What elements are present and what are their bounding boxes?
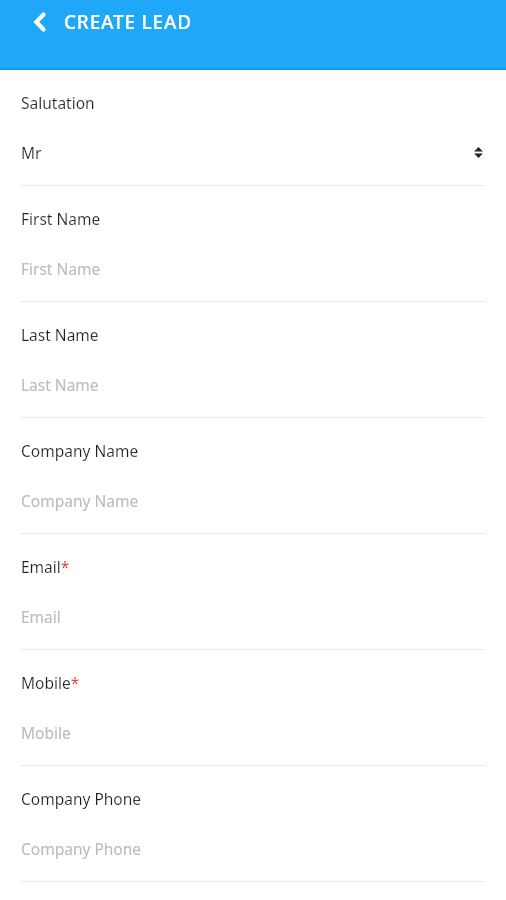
staticText: Email (21, 606, 61, 627)
staticText: Company Name (21, 440, 139, 461)
staticText: First Name (21, 208, 101, 229)
button[interactable]: Company Name (0, 418, 506, 534)
staticText: Salutation (21, 92, 95, 113)
staticText: Company Phone (21, 788, 142, 809)
staticText: Mobile (21, 722, 71, 743)
button[interactable]: Mobile* (0, 650, 506, 766)
staticText: Last Name (21, 374, 99, 395)
button[interactable]: First Name (0, 186, 506, 302)
button[interactable]: Back (18, 0, 62, 44)
staticText: Last Name (21, 324, 99, 345)
staticText: Mr (21, 142, 42, 163)
button[interactable]: Email* (0, 534, 506, 650)
button[interactable]: Company Phone (0, 766, 506, 882)
staticText: Email* (21, 556, 70, 577)
staticText: Mobile* (21, 672, 80, 693)
staticText: Company Name (21, 490, 139, 511)
staticText: CREATE LEAD (64, 9, 192, 35)
button[interactable]: Salutation (0, 70, 506, 186)
button[interactable]: Last Name (0, 302, 506, 418)
staticText: Company Phone (21, 838, 142, 859)
staticText: First Name (21, 258, 101, 279)
